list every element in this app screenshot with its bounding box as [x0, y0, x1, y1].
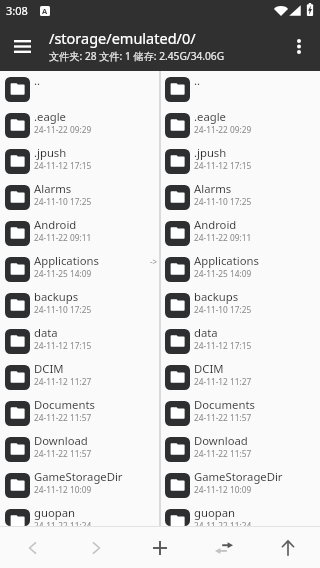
staticText: 24-11-25 14:09: [194, 268, 252, 279]
staticText: 24-11-22 11:24: [34, 520, 92, 526]
button[interactable]: backups: [0, 287, 159, 323]
staticText: 24-11-12 17:15: [34, 160, 92, 171]
staticText: Android: [34, 217, 77, 232]
button[interactable]: Download: [0, 431, 159, 467]
staticText: Alarms: [194, 181, 232, 196]
staticText: 24-11-12 11:27: [34, 376, 92, 387]
button[interactable]: More options: [279, 26, 319, 66]
staticText: Download: [34, 433, 88, 448]
staticText: 文件夹: 28 文件: 1 储存: 2.45G/34.06G: [49, 49, 225, 63]
staticText: 24-11-12 10:09: [194, 484, 252, 495]
staticText: 24-11-12 10:09: [34, 484, 92, 495]
staticText: /storage/emulated/0/: [49, 28, 196, 48]
button[interactable]: Documents: [161, 395, 320, 431]
button[interactable]: ..: [0, 71, 159, 107]
staticText: 24-11-12 17:15: [34, 340, 92, 351]
button[interactable]: New: [128, 527, 192, 568]
button[interactable]: .jpush: [0, 143, 159, 179]
button[interactable]: Forward: [64, 527, 128, 568]
staticText: 24-11-12 11:27: [194, 376, 252, 387]
staticText: DCIM: [194, 361, 224, 376]
button[interactable]: Go up: [256, 527, 320, 568]
button[interactable]: guopan: [161, 503, 320, 526]
staticText: ..: [194, 73, 201, 88]
staticText: 24-11-22 09:29: [194, 124, 252, 135]
button[interactable]: Alarms: [0, 179, 159, 215]
button[interactable]: DCIM: [161, 359, 320, 395]
button[interactable]: Applications: [161, 251, 320, 287]
staticText: backups: [34, 289, 79, 304]
staticText: Applications: [34, 253, 99, 268]
button[interactable]: Applications: [0, 251, 159, 287]
staticText: 24-11-10 17:25: [34, 196, 92, 207]
staticText: .eagle: [34, 109, 66, 124]
staticText: A: [42, 6, 48, 16]
staticText: 24-11-22 11:57: [194, 412, 252, 423]
button[interactable]: GameStorageDir: [161, 467, 320, 503]
staticText: .jpush: [34, 145, 67, 160]
staticText: 3:08: [6, 3, 28, 18]
staticText: 24-11-10 17:25: [34, 304, 92, 315]
staticText: 24-11-10 17:25: [194, 304, 252, 315]
staticText: Documents: [34, 397, 95, 412]
button[interactable]: .jpush: [161, 143, 320, 179]
button[interactable]: Open navigation menu: [0, 24, 44, 68]
staticText: Alarms: [34, 181, 72, 196]
button[interactable]: ..: [161, 71, 320, 107]
staticText: 24-11-12 17:15: [194, 340, 252, 351]
button[interactable]: GameStorageDir: [0, 467, 159, 503]
button[interactable]: data: [0, 323, 159, 359]
button[interactable]: Back: [0, 527, 64, 568]
staticText: 24-11-22 11:24: [194, 520, 252, 526]
staticText: 24-11-22 09:29: [34, 124, 92, 135]
button[interactable]: .eagle: [0, 107, 159, 143]
button[interactable]: guopan: [0, 503, 159, 526]
staticText: DCIM: [34, 361, 64, 376]
staticText: Documents: [194, 397, 255, 412]
staticText: 24-11-25 14:09: [34, 268, 92, 279]
button[interactable]: Android: [0, 215, 159, 251]
staticText: guopan: [194, 505, 236, 520]
staticText: ->: [150, 256, 158, 267]
staticText: data: [34, 325, 58, 340]
button[interactable]: Android: [161, 215, 320, 251]
staticText: ..: [34, 73, 41, 88]
staticText: data: [194, 325, 218, 340]
staticText: backups: [194, 289, 239, 304]
button[interactable]: Download: [161, 431, 320, 467]
staticText: GameStorageDir: [194, 469, 283, 484]
staticText: Applications: [194, 253, 259, 268]
staticText: 24-11-22 09:11: [34, 232, 92, 243]
staticText: 24-11-22 11:57: [34, 448, 92, 459]
button[interactable]: Documents: [0, 395, 159, 431]
button[interactable]: Alarms: [161, 179, 320, 215]
button[interactable]: DCIM: [0, 359, 159, 395]
staticText: .jpush: [194, 145, 227, 160]
button[interactable]: Swap panes: [192, 527, 256, 568]
button[interactable]: data: [161, 323, 320, 359]
staticText: 24-11-12 17:15: [194, 160, 252, 171]
staticText: Android: [194, 217, 237, 232]
button[interactable]: backups: [161, 287, 320, 323]
staticText: GameStorageDir: [34, 469, 123, 484]
staticText: 24-11-10 17:25: [194, 196, 252, 207]
staticText: 24-11-22 11:57: [34, 412, 92, 423]
staticText: .eagle: [194, 109, 226, 124]
staticText: 24-11-22 09:11: [194, 232, 252, 243]
staticText: guopan: [34, 505, 76, 520]
staticText: Download: [194, 433, 248, 448]
staticText: 24-11-22 11:57: [194, 448, 252, 459]
button[interactable]: .eagle: [161, 107, 320, 143]
